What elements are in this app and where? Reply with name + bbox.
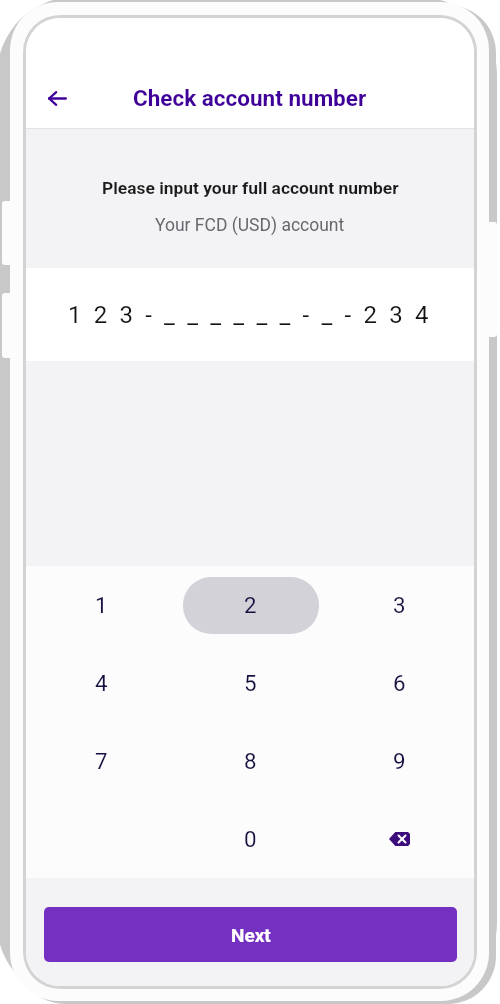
button[interactable]: 2 (176, 566, 325, 644)
button[interactable]: 4 (26, 644, 176, 722)
button[interactable]: 0 (176, 800, 325, 878)
staticText: 1 2 3 - _ _ _ _ _ _ - _ - 2 3 4 (68, 301, 432, 329)
staticText: Next (231, 924, 271, 946)
staticText: 2 (244, 592, 257, 618)
staticText: 0 (244, 826, 257, 852)
button[interactable]: Backspace (325, 800, 474, 878)
button[interactable]: 9 (325, 722, 474, 800)
staticText: 7 (95, 748, 108, 774)
staticText: 6 (393, 670, 406, 696)
staticText: 9 (393, 748, 406, 774)
staticText: Your FCD (USD) account (155, 215, 345, 236)
button[interactable]: Back (35, 76, 79, 120)
staticText: Check account number (133, 85, 367, 111)
button[interactable]: 3 (325, 566, 474, 644)
button[interactable]: 8 (176, 722, 325, 800)
button[interactable]: 1 (26, 566, 176, 644)
button[interactable]: 5 (176, 644, 325, 722)
staticText: 8 (244, 748, 257, 774)
staticText: 1 (95, 592, 108, 618)
button[interactable]: 7 (26, 722, 176, 800)
staticText: Please input your full account number (102, 178, 399, 198)
button[interactable]: Next (44, 907, 457, 962)
staticText: 5 (244, 670, 257, 696)
staticText: 4 (95, 670, 108, 696)
other: Backspace (389, 832, 410, 846)
staticText: 3 (393, 592, 406, 618)
button[interactable]: 6 (325, 644, 474, 722)
